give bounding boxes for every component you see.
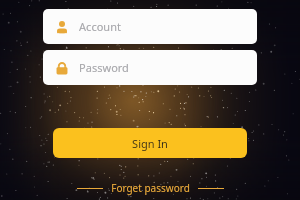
staticText: Forget password [111, 181, 190, 195]
button[interactable]: Sign In [53, 128, 247, 158]
staticText: Password [79, 60, 129, 75]
button[interactable]: Forget password [77, 181, 224, 195]
other: Password [55, 61, 69, 75]
button[interactable]: Password [43, 50, 257, 85]
staticText: Sign In [132, 136, 168, 151]
staticText: Account [79, 19, 121, 34]
button[interactable]: Account [43, 9, 257, 44]
other: Account [55, 20, 69, 34]
